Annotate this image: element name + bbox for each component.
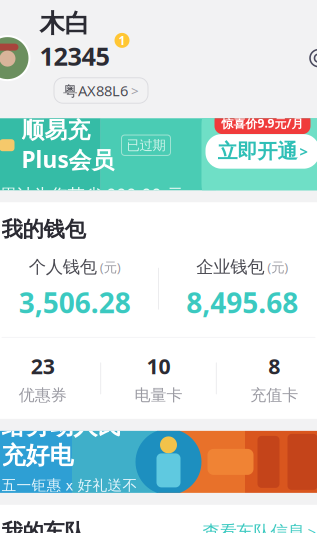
staticText: 充值卡 [250, 385, 298, 405]
staticText: > [299, 142, 307, 161]
staticText: 1 [118, 32, 125, 48]
button[interactable]: 顺易充Plus会员 [0, 118, 317, 190]
staticText: 优惠券 [19, 385, 67, 405]
staticText: 3,506.28 [19, 284, 131, 321]
button[interactable]: 粤AX88L6 [54, 78, 148, 103]
button[interactable]: Profile photo [0, 36, 29, 80]
staticText: 我的车队 [1, 519, 85, 533]
staticText: (元) [100, 258, 121, 276]
staticText: 8 [268, 352, 280, 380]
staticText: 给劳动人民充好电 [1, 411, 121, 470]
staticText: 企业钱包 [196, 256, 264, 278]
staticText: 粤AX88L6 [63, 81, 128, 100]
staticText: (元) [267, 258, 288, 276]
staticText: 个人钱包 [29, 256, 97, 278]
staticText: 木白12345 [39, 8, 109, 73]
staticText: > [131, 82, 139, 99]
button[interactable]: Labor Day charging promotion [0, 431, 317, 493]
staticText: 立即开通 [217, 139, 297, 164]
staticText: 五一钜惠 x 好礼送不停 [1, 475, 137, 513]
button[interactable]: Settings [305, 45, 317, 71]
staticText: 23 [31, 352, 55, 380]
staticText: > [307, 522, 315, 533]
staticText: 累计为您节省 999.00 元 [0, 183, 183, 206]
button[interactable]: 23 [0, 352, 100, 405]
button[interactable]: 10 [101, 352, 216, 405]
staticText: 8,495.68 [186, 284, 298, 321]
staticText: 查看车队信息 [202, 521, 304, 533]
button[interactable]: 8 [217, 352, 317, 405]
staticText: 已过期 [126, 137, 165, 153]
staticText: 电量卡 [134, 385, 182, 405]
staticText: 惊喜价9.9元/月 [221, 115, 303, 131]
staticText: 10 [146, 352, 170, 380]
staticText: 顺易充Plus会员 [21, 116, 114, 174]
button[interactable]: 查看车队信息 [202, 521, 315, 533]
button[interactable]: 企业钱包 [159, 256, 317, 321]
button[interactable]: 个人钱包 [0, 256, 158, 321]
staticText: 我的钱包 [1, 216, 85, 242]
